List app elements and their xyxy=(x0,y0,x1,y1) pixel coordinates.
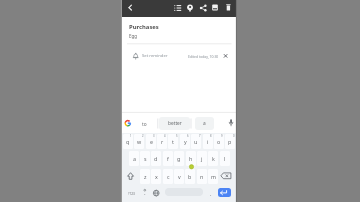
staticText: x xyxy=(155,173,158,180)
button[interactable]: z xyxy=(140,169,150,184)
staticText: 5 xyxy=(176,134,178,138)
staticText: p xyxy=(228,138,232,145)
button[interactable]: w xyxy=(134,134,144,149)
staticText: 7 xyxy=(199,134,201,138)
staticText: a xyxy=(133,155,136,162)
button[interactable]: i xyxy=(203,134,213,149)
staticText: 3 xyxy=(153,134,155,138)
button[interactable] xyxy=(223,2,234,14)
button[interactable]: y xyxy=(180,134,190,149)
staticText: i xyxy=(207,138,209,145)
staticText: b xyxy=(188,173,192,180)
button[interactable]: m xyxy=(208,169,218,184)
staticText: r xyxy=(161,138,164,145)
staticText: ?123 xyxy=(128,192,135,196)
button[interactable] xyxy=(129,48,189,64)
button[interactable]: . xyxy=(206,186,216,201)
button[interactable]: c xyxy=(163,169,173,184)
button[interactable]: a xyxy=(195,115,214,131)
button[interactable] xyxy=(221,51,230,60)
staticText: n xyxy=(200,173,204,180)
button[interactable] xyxy=(125,2,135,14)
button[interactable]: l xyxy=(220,151,230,166)
button[interactable]: g xyxy=(174,151,184,166)
button[interactable] xyxy=(210,2,221,14)
staticText: j xyxy=(201,155,203,162)
button[interactable] xyxy=(218,188,231,197)
staticText: a xyxy=(203,120,206,127)
staticText: h xyxy=(189,155,193,162)
button[interactable]: h xyxy=(186,151,196,166)
staticText: o xyxy=(217,138,221,145)
staticText: s xyxy=(144,155,147,162)
button[interactable]: n xyxy=(197,169,207,184)
staticText: 8 xyxy=(210,134,212,138)
staticText: Edited today, 10:30 xyxy=(188,54,219,59)
button[interactable]: better xyxy=(159,115,190,131)
staticText: c xyxy=(167,173,170,180)
staticText: 6 xyxy=(187,134,189,138)
staticText: better xyxy=(168,120,182,127)
button[interactable] xyxy=(172,2,183,14)
button[interactable] xyxy=(185,2,196,14)
staticText: l xyxy=(224,155,226,162)
staticText: 0 xyxy=(233,134,235,138)
button[interactable]: o xyxy=(214,134,224,149)
staticText: Purchases xyxy=(129,23,159,31)
staticText: 4 xyxy=(164,134,166,138)
button[interactable]: a xyxy=(129,151,139,166)
button[interactable]: e xyxy=(146,134,156,149)
staticText: f xyxy=(167,155,169,162)
staticText: v xyxy=(178,173,181,180)
button[interactable] xyxy=(151,186,162,201)
staticText: u xyxy=(194,138,198,145)
button[interactable]: j xyxy=(197,151,207,166)
staticText: t xyxy=(172,138,174,145)
staticText: k xyxy=(212,155,215,162)
staticText: 9 xyxy=(221,134,223,138)
staticText: to xyxy=(142,121,147,128)
button[interactable] xyxy=(198,2,209,14)
button[interactable]: ?123 xyxy=(123,186,139,201)
button[interactable]: to xyxy=(132,116,157,132)
button[interactable]: r xyxy=(157,134,167,149)
button[interactable]: u xyxy=(191,134,201,149)
staticText: Set reminder xyxy=(142,53,168,59)
button[interactable]: p xyxy=(225,134,235,149)
staticText: d xyxy=(154,155,158,162)
staticText: 1 xyxy=(130,134,132,138)
button[interactable]: x xyxy=(151,169,161,184)
staticText: . xyxy=(210,190,212,197)
staticText: q xyxy=(126,138,130,145)
button[interactable]: q xyxy=(123,134,133,149)
staticText: Egg xyxy=(129,33,138,39)
staticText: 2 xyxy=(142,134,144,138)
button[interactable] xyxy=(220,169,235,184)
button[interactable]: k xyxy=(208,151,218,166)
staticText: z xyxy=(144,173,147,180)
staticText: g xyxy=(177,155,181,162)
staticText: y xyxy=(184,138,187,145)
staticText: e xyxy=(150,138,153,145)
button[interactable]: s xyxy=(140,151,150,166)
staticText: m xyxy=(211,173,216,180)
button[interactable] xyxy=(123,169,138,184)
button[interactable]: d xyxy=(151,151,161,166)
button[interactable]: f xyxy=(163,151,173,166)
staticText: w xyxy=(137,138,142,145)
button[interactable]: v xyxy=(174,169,184,184)
button[interactable]: t xyxy=(168,134,178,149)
button[interactable]: b xyxy=(185,169,195,184)
